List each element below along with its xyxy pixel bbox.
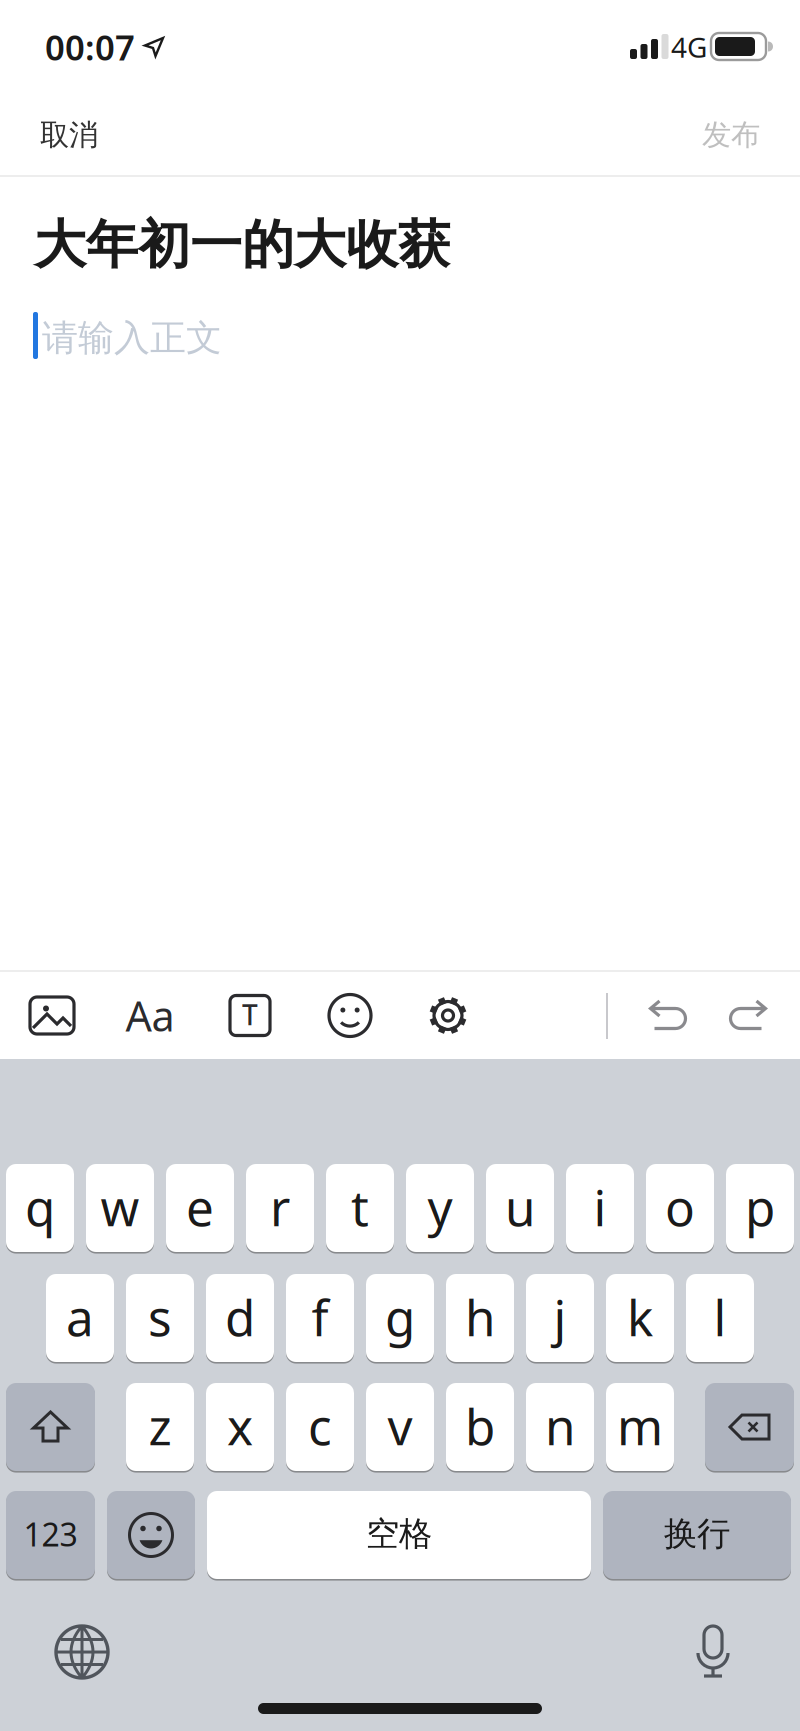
button[interactable]: o [646, 1164, 714, 1254]
staticText: j [553, 1284, 566, 1350]
staticText: a [66, 1284, 94, 1350]
button[interactable]: a [46, 1274, 114, 1364]
button[interactable]: m [606, 1383, 674, 1473]
staticText: 00:07 [45, 24, 135, 70]
button[interactable]: Insert photo [16, 972, 88, 1059]
staticText: o [665, 1174, 695, 1240]
button[interactable]: Delete [705, 1383, 794, 1473]
button[interactable]: 空格 [207, 1491, 591, 1581]
button[interactable]: g [366, 1274, 434, 1364]
button[interactable]: Text style [114, 972, 186, 1059]
button[interactable]: e [166, 1164, 234, 1254]
staticText: r [270, 1174, 290, 1240]
button[interactable]: v [366, 1383, 434, 1473]
button[interactable]: Emoji [107, 1491, 195, 1581]
button[interactable]: h [446, 1274, 514, 1364]
staticText: g [385, 1284, 415, 1350]
button[interactable]: c [286, 1383, 354, 1473]
staticText: e [186, 1174, 214, 1240]
staticText: c [308, 1393, 332, 1459]
button[interactable]: 取消 [30, 105, 108, 165]
button[interactable]: u [486, 1164, 554, 1254]
button[interactable]: 换行 [603, 1491, 791, 1581]
staticText: y [427, 1174, 452, 1240]
button[interactable]: r [246, 1164, 314, 1254]
staticText: d [225, 1284, 255, 1350]
button[interactable]: Redo [718, 972, 778, 1059]
staticText: 4G [671, 28, 707, 66]
button[interactable]: s [126, 1274, 194, 1364]
staticText: n [545, 1393, 575, 1459]
staticText: w [100, 1174, 139, 1240]
staticText: k [627, 1284, 653, 1350]
staticText: 取消 [40, 117, 98, 153]
button[interactable]: k [606, 1274, 674, 1364]
staticText: z [148, 1393, 171, 1459]
staticText: x [227, 1393, 253, 1459]
button[interactable]: n [526, 1383, 594, 1473]
button[interactable]: t [326, 1164, 394, 1254]
staticText: 换行 [664, 1513, 730, 1554]
staticText: m [617, 1393, 663, 1459]
button[interactable]: i [566, 1164, 634, 1254]
staticText: b [465, 1393, 495, 1459]
staticText: f [311, 1284, 328, 1350]
staticText: q [25, 1174, 55, 1240]
staticText: i [593, 1174, 606, 1240]
button[interactable]: q [6, 1164, 74, 1254]
button[interactable]: f [286, 1274, 354, 1364]
button[interactable]: l [686, 1274, 754, 1364]
button[interactable]: b [446, 1383, 514, 1473]
button[interactable]: d [206, 1274, 274, 1364]
button[interactable]: j [526, 1274, 594, 1364]
staticText: t [351, 1174, 369, 1240]
button[interactable]: 发布 [692, 105, 770, 165]
staticText: h [465, 1284, 495, 1350]
button[interactable]: z [126, 1383, 194, 1473]
staticText: T [242, 996, 258, 1033]
button[interactable]: Dictate [694, 1626, 732, 1678]
staticText: 空格 [366, 1513, 432, 1554]
button[interactable]: y [406, 1164, 474, 1254]
staticText: 123 [23, 1513, 77, 1555]
staticText: p [745, 1174, 775, 1240]
button[interactable]: 123 [6, 1491, 95, 1581]
staticText: 大年初一的大收获 [34, 213, 450, 277]
button[interactable]: Settings [412, 972, 484, 1059]
button[interactable]: w [86, 1164, 154, 1254]
staticText: Aa [125, 988, 174, 1043]
button[interactable]: p [726, 1164, 794, 1254]
staticText: s [148, 1284, 172, 1350]
button[interactable]: Next keyboard [56, 1626, 108, 1678]
staticText: v [387, 1393, 412, 1459]
button[interactable]: Emoji [314, 972, 386, 1059]
staticText: u [505, 1174, 535, 1240]
button[interactable]: Title format [214, 972, 286, 1059]
button[interactable]: Shift [6, 1383, 95, 1473]
staticText: 发布 [702, 117, 760, 153]
button[interactable]: Undo [638, 972, 698, 1059]
staticText: l [713, 1284, 726, 1350]
button[interactable]: x [206, 1383, 274, 1473]
staticText: 请输入正文 [42, 316, 222, 360]
